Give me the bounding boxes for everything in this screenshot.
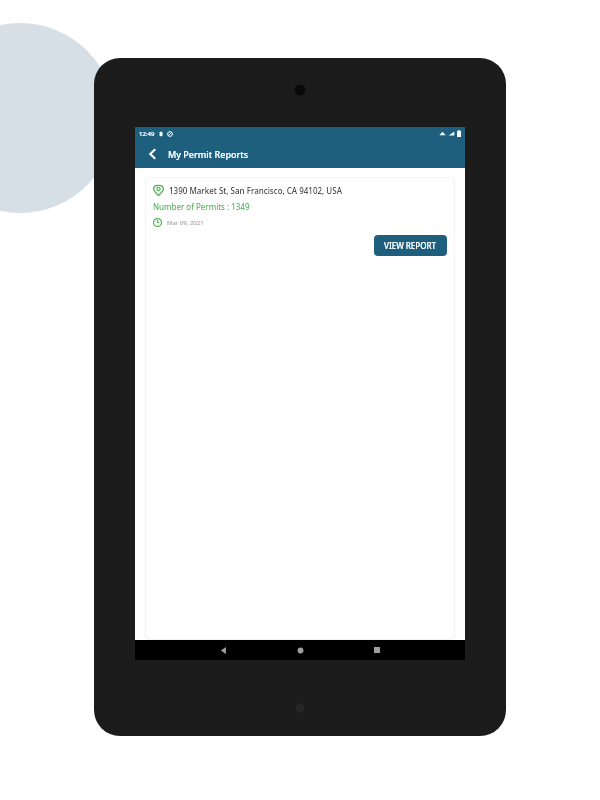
button[interactable]: VIEW REPORT (374, 235, 447, 256)
staticText: 12:49 (139, 130, 155, 138)
staticText: Number of Permits : 1349 (153, 201, 250, 212)
staticText: VIEW REPORT (384, 240, 437, 251)
staticText: 1390 Market St, San Francisco, CA 94102,… (169, 185, 342, 196)
button[interactable]: Back (213, 640, 233, 660)
button[interactable]: Home (290, 640, 310, 660)
staticText: My Permit Reports (168, 148, 249, 160)
button[interactable]: 1390 Market St, San Francisco, CA 94102,… (145, 177, 455, 640)
staticText: Mar 09, 2021 (167, 219, 204, 227)
button[interactable]: Recent apps (367, 640, 387, 660)
button[interactable]: Back (143, 144, 163, 164)
